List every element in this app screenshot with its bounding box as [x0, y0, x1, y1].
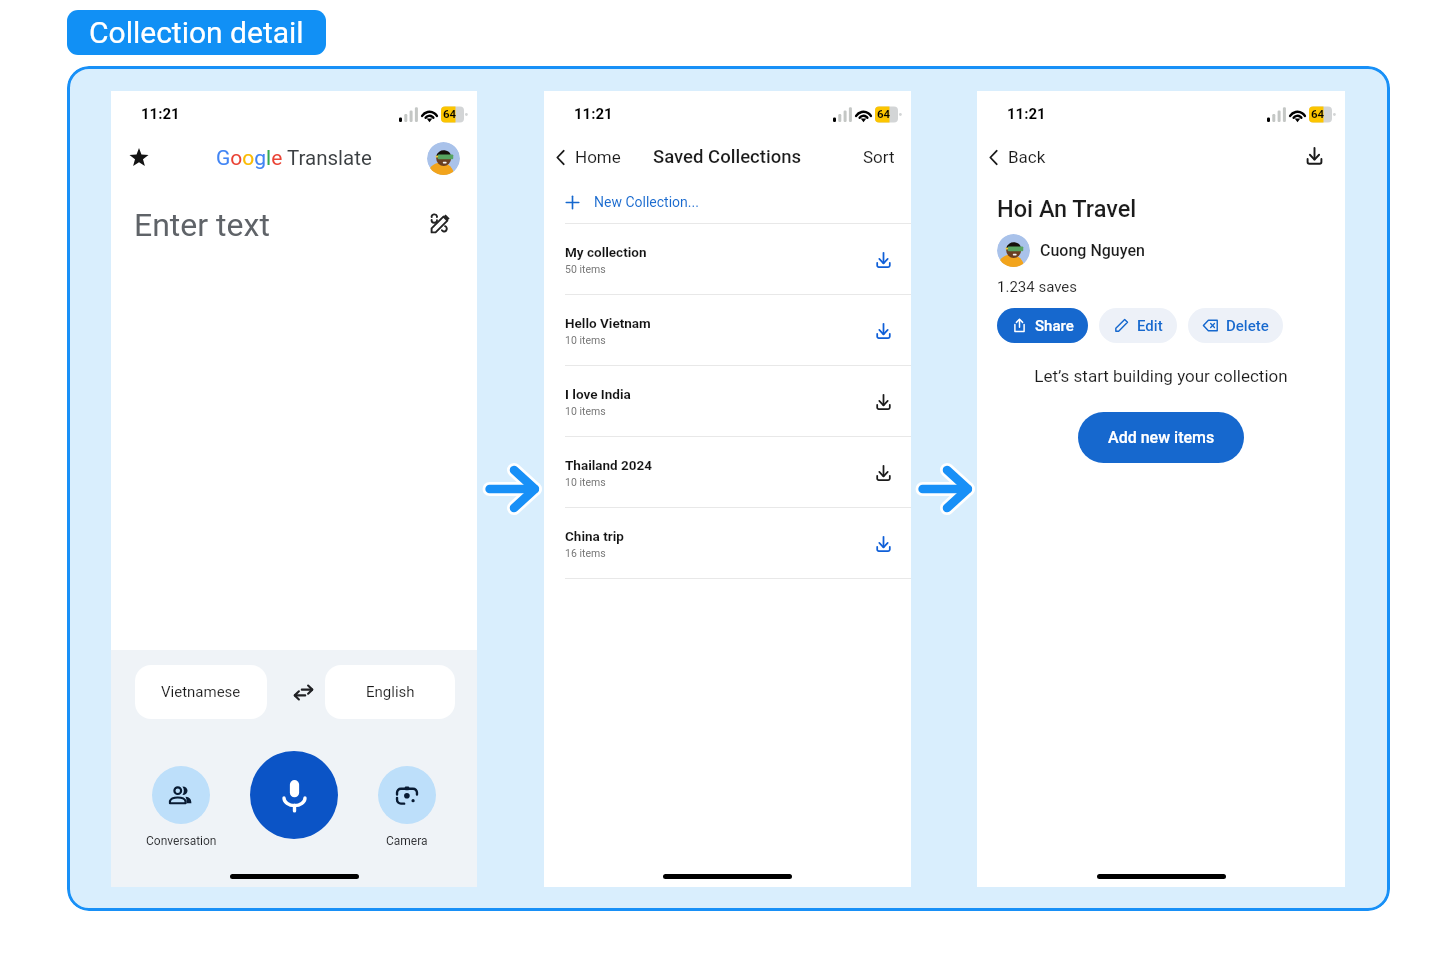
staticText: Share — [1035, 317, 1074, 335]
staticText: 10 items — [565, 405, 606, 417]
staticText: I love India — [565, 386, 631, 402]
staticText: Google Translate — [216, 146, 372, 171]
staticText: Saved Collections — [653, 146, 802, 168]
button[interactable]: My collection — [544, 224, 911, 294]
button[interactable]: Delete — [1188, 308, 1283, 343]
button[interactable]: Swap languages — [275, 665, 331, 719]
staticText: Let’s start building your collection — [977, 366, 1345, 386]
staticText: Add new items — [1108, 428, 1215, 447]
button[interactable]: Collection detail — [67, 10, 326, 55]
staticText: 64 — [1311, 107, 1325, 120]
button[interactable]: Edit — [1099, 308, 1177, 343]
staticText: 11:21 — [141, 105, 180, 123]
button[interactable]: Camera — [352, 766, 462, 848]
button[interactable]: Download — [865, 525, 901, 561]
staticText: China trip — [565, 528, 624, 544]
staticText: Home — [575, 147, 621, 167]
button[interactable]: China trip — [544, 508, 911, 578]
staticText: Hello Vietnam — [565, 315, 651, 331]
button[interactable]: Thailand 2024 — [544, 437, 911, 507]
button[interactable]: Share — [997, 308, 1088, 343]
staticText: Back — [1008, 147, 1046, 167]
staticText: Enter text — [134, 206, 270, 244]
staticText: Cuong Nguyen — [1040, 241, 1145, 260]
button[interactable]: Handwriting — [421, 205, 459, 243]
staticText: Hoi An Travel — [997, 195, 1137, 223]
staticText: 11:21 — [1007, 105, 1046, 123]
staticText: 10 items — [565, 334, 606, 346]
staticText: My collection — [565, 244, 647, 260]
staticText: Sort — [863, 147, 895, 167]
button[interactable]: Conversation — [126, 766, 236, 848]
button[interactable]: Download — [865, 312, 901, 348]
button[interactable]: Microphone — [250, 751, 338, 839]
button[interactable]: Download — [865, 454, 901, 490]
staticText: 16 items — [565, 547, 606, 559]
staticText: 64 — [877, 107, 891, 120]
button[interactable]: English — [325, 665, 455, 719]
staticText: Thailand 2024 — [565, 457, 653, 473]
button[interactable]: Download — [1296, 138, 1332, 174]
staticText: New Collection... — [594, 194, 699, 210]
button[interactable]: Download — [865, 383, 901, 419]
staticText: English — [366, 683, 415, 701]
staticText: 64 — [443, 107, 457, 120]
button[interactable]: New Collection... — [544, 181, 911, 223]
button[interactable]: Saved — [119, 138, 159, 178]
staticText: Camera — [386, 834, 428, 848]
button[interactable]: Home — [545, 141, 627, 173]
staticText: Edit — [1137, 317, 1163, 335]
staticText: Conversation — [146, 834, 217, 848]
staticText: Collection detail — [89, 15, 304, 50]
button[interactable]: Add new items — [1078, 412, 1244, 463]
staticText: 10 items — [565, 476, 606, 488]
button[interactable]: Account — [427, 142, 460, 175]
staticText: Vietnamese — [161, 683, 241, 701]
staticText: 11:21 — [574, 105, 613, 123]
button[interactable]: I love India — [544, 366, 911, 436]
staticText: 50 items — [565, 263, 606, 275]
button[interactable]: Download — [865, 241, 901, 277]
button[interactable]: Hello Vietnam — [544, 295, 911, 365]
staticText: Delete — [1226, 317, 1269, 335]
button[interactable]: Vietnamese — [135, 665, 267, 719]
button[interactable]: Back — [978, 141, 1052, 173]
staticText: 1.234 saves — [997, 278, 1078, 296]
button[interactable]: Sort — [855, 139, 903, 175]
